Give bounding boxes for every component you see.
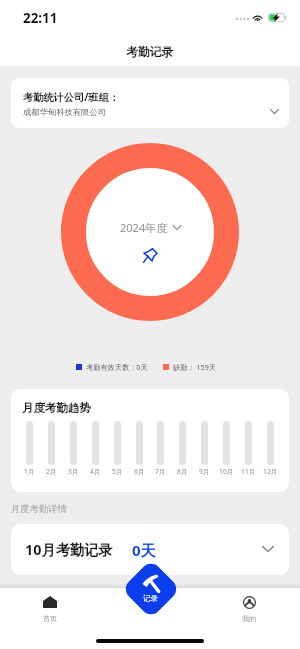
staticText: 3月 <box>68 467 79 476</box>
button[interactable]: 我的 <box>229 596 269 623</box>
button[interactable]: 10月考勤记录 <box>11 524 289 575</box>
staticText: 11月 <box>241 467 256 476</box>
staticText: 2024年度 <box>120 220 168 235</box>
staticText: 7月 <box>155 467 166 476</box>
staticText: 1月 <box>24 467 35 476</box>
staticText: 考勤有效天数：0天 <box>86 362 148 372</box>
staticText: 月度考勤趋势 <box>22 401 91 415</box>
staticText: 记录 <box>143 594 158 603</box>
button[interactable]: 2024年度 <box>120 220 181 235</box>
staticText: 9月 <box>199 467 210 476</box>
staticText: 12月 <box>263 467 278 476</box>
button[interactable]: 考勤统计公司/班组： <box>11 78 289 128</box>
button[interactable]: 记录 <box>121 559 181 619</box>
staticText: 2月 <box>46 467 57 476</box>
staticText: 22:11 <box>23 9 58 27</box>
button[interactable]: Pin location <box>143 248 158 263</box>
staticText: 10月考勤记录 <box>25 540 113 560</box>
staticText: 成都华甸科技有限公司 <box>23 107 106 117</box>
staticText: 月度考勤详情 <box>11 503 67 515</box>
staticText: 5月 <box>112 467 123 476</box>
staticText: 首页 <box>43 614 57 623</box>
staticText: 4月 <box>90 467 101 476</box>
staticText: 10月 <box>219 467 234 476</box>
staticText: 我的 <box>242 614 256 623</box>
staticText: 8月 <box>177 467 188 476</box>
button[interactable]: 首页 <box>30 596 70 623</box>
staticText: 考勤记录 <box>126 45 174 60</box>
staticText: 考勤统计公司/班组： <box>23 90 119 104</box>
staticText: 6月 <box>134 467 145 476</box>
staticText: 缺勤： 159天 <box>173 362 216 372</box>
staticText: 0天 <box>132 540 156 560</box>
